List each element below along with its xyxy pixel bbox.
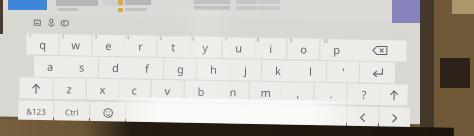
staticText: v (164, 83, 171, 98)
staticText: 9 (289, 37, 293, 44)
button[interactable]: &123 (18, 100, 53, 122)
staticText: l (309, 64, 312, 79)
button[interactable]: Keyboard layout (31, 17, 43, 28)
staticText: k (275, 63, 281, 78)
staticText: z (66, 81, 73, 96)
staticText: f (145, 61, 149, 76)
button[interactable]: Ctrl (54, 101, 89, 123)
staticText: t (171, 39, 176, 54)
staticText: . (329, 86, 333, 101)
button[interactable]: Enter (360, 62, 395, 83)
button[interactable]: Left arrow (347, 106, 378, 128)
button[interactable] (126, 102, 346, 127)
button[interactable]: Shift (19, 77, 53, 99)
staticText: 1 (28, 32, 32, 40)
staticText: 8 (256, 37, 260, 44)
staticText: r (138, 38, 144, 54)
button[interactable]: g (164, 58, 196, 80)
button[interactable]: u (222, 37, 255, 59)
button[interactable]: a (34, 56, 66, 77)
button[interactable]: s (66, 56, 98, 78)
staticText: h (210, 62, 217, 77)
button[interactable]: b (184, 80, 217, 102)
button[interactable]: y (189, 36, 222, 58)
button[interactable]: c (118, 79, 151, 101)
button[interactable]: t (157, 36, 190, 57)
staticText: 5 (159, 35, 163, 42)
staticText: m (260, 85, 272, 100)
button[interactable]: f (131, 57, 163, 79)
button[interactable]: x (86, 79, 119, 100)
button[interactable]: k (262, 60, 294, 81)
staticText: e (105, 38, 113, 53)
staticText: 3 (94, 34, 98, 41)
staticText: p (333, 42, 340, 57)
button[interactable]: Close (391, 35, 406, 48)
staticText: s (79, 59, 85, 75)
button[interactable]: v (151, 80, 184, 101)
button[interactable]: e (92, 35, 125, 56)
staticText: a (47, 59, 54, 74)
button[interactable]: Voice input (45, 17, 57, 28)
staticText: q (39, 37, 47, 52)
button[interactable]: i (254, 38, 287, 59)
button[interactable]: w (59, 34, 92, 56)
button[interactable]: q (26, 33, 59, 55)
staticText: ? (361, 87, 367, 102)
staticText: 2 (61, 33, 65, 40)
button[interactable]: n (216, 81, 249, 103)
button[interactable]: h (197, 59, 229, 80)
button[interactable]: Right arrow (379, 107, 410, 129)
staticText: n (229, 84, 237, 99)
staticText: 6 (191, 35, 195, 43)
button[interactable]: p (320, 39, 353, 60)
button[interactable]: ' (327, 61, 359, 83)
button[interactable]: , (281, 82, 314, 104)
staticText: , (296, 85, 300, 100)
staticText: w (71, 37, 81, 52)
staticText: y (202, 40, 209, 55)
staticText: x (99, 82, 106, 97)
staticText: d (112, 60, 119, 75)
staticText: 7 (224, 36, 228, 43)
staticText: u (235, 40, 242, 55)
staticText: 10 (322, 38, 329, 45)
button[interactable]: j (229, 59, 261, 81)
staticText: i (269, 41, 272, 56)
staticText: b (197, 84, 205, 99)
staticText: j (244, 62, 247, 78)
button[interactable]: o (287, 38, 320, 60)
button[interactable]: z (53, 78, 86, 100)
button[interactable]: Handwriting (59, 17, 71, 28)
button[interactable]: ? (347, 83, 380, 105)
staticText: 4 (126, 34, 130, 41)
staticText: c (131, 82, 138, 97)
button[interactable]: Emoji (90, 102, 125, 123)
button[interactable]: Up arrow (379, 84, 408, 105)
button[interactable]: . (314, 83, 347, 104)
staticText: o (300, 41, 307, 57)
staticText: g (177, 61, 184, 76)
button[interactable]: r (124, 35, 157, 57)
button[interactable]: d (99, 57, 131, 78)
staticText: Ctrl (65, 106, 79, 117)
button[interactable]: Backspace (352, 39, 407, 61)
button[interactable]: l (294, 60, 326, 82)
staticText: &123 (26, 105, 46, 117)
staticText: ' (342, 64, 345, 79)
button[interactable]: m (249, 82, 282, 103)
